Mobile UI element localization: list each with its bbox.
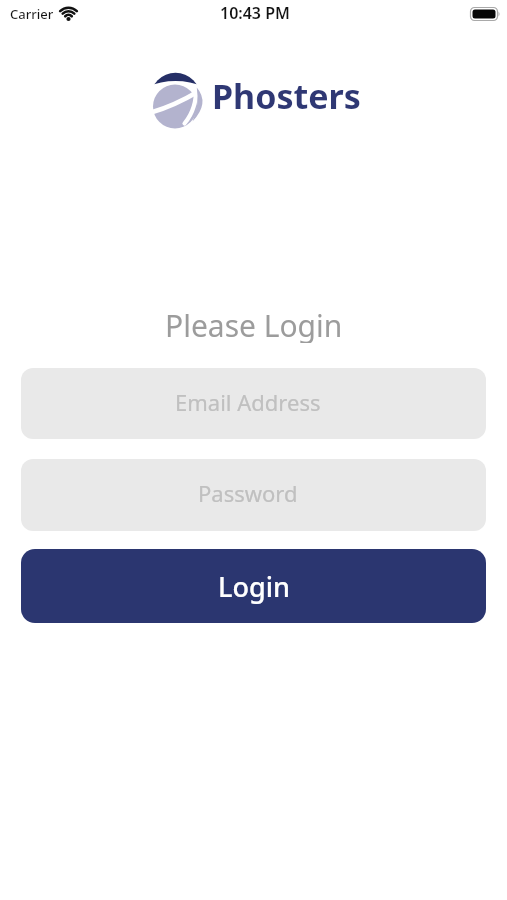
staticText: Please Login — [165, 305, 343, 343]
staticText: 10:43 PM — [220, 2, 290, 24]
staticText: Password — [198, 478, 298, 508]
staticText: Carrier — [10, 5, 54, 23]
staticText: Login — [218, 568, 290, 605]
button[interactable]: Password — [21, 459, 486, 531]
button[interactable]: Login — [21, 549, 486, 623]
staticText: Email Address — [175, 387, 321, 417]
button[interactable]: Email Address — [21, 368, 486, 439]
staticText: Phosters — [212, 73, 361, 119]
